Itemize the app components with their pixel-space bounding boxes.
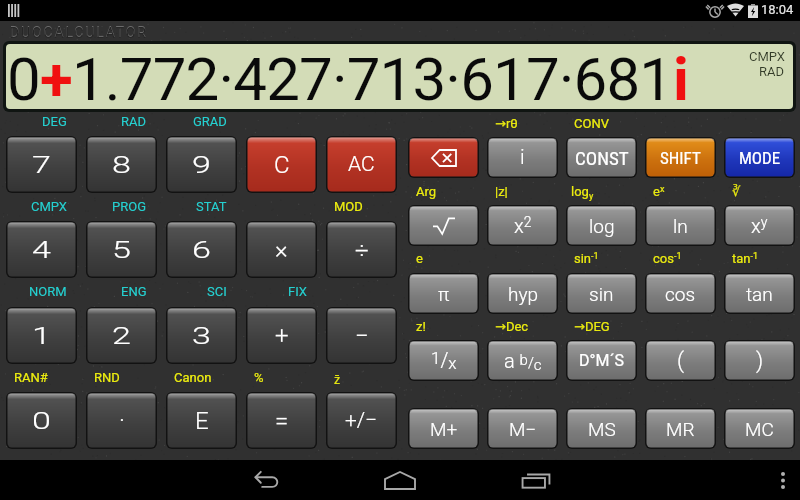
button[interactable]: log bbox=[566, 205, 637, 246]
staticText: M+ bbox=[430, 418, 458, 440]
button[interactable]: 6 bbox=[166, 221, 237, 278]
button[interactable]: tan bbox=[724, 273, 795, 314]
staticText: DUOCALCULATOR bbox=[10, 25, 148, 41]
staticText: Canon bbox=[174, 370, 212, 385]
staticText: logy bbox=[571, 184, 594, 201]
staticText: π bbox=[438, 283, 450, 305]
staticText: MOD bbox=[334, 199, 363, 214]
staticText: 1 bbox=[32, 322, 52, 350]
button[interactable]: − bbox=[326, 307, 397, 364]
staticText: AC bbox=[348, 152, 375, 177]
button[interactable]: × bbox=[246, 221, 317, 278]
button[interactable]: cos bbox=[645, 273, 716, 314]
button[interactable]: 0 bbox=[6, 392, 77, 449]
button[interactable]: 2 bbox=[86, 307, 157, 364]
button[interactable]: a b/c bbox=[487, 340, 558, 381]
button[interactable]: ) bbox=[724, 340, 795, 381]
button[interactable]: 1 bbox=[6, 307, 77, 364]
button[interactable]: MS bbox=[566, 408, 637, 449]
staticText: z! bbox=[416, 319, 426, 334]
staticText: i bbox=[673, 44, 689, 109]
staticText: 6 bbox=[192, 236, 212, 264]
button[interactable]: D°M´S bbox=[566, 340, 637, 381]
button[interactable]: M− bbox=[487, 408, 558, 449]
button[interactable]: Home bbox=[370, 460, 430, 500]
button[interactable]: 3 bbox=[166, 307, 237, 364]
button[interactable]: · bbox=[86, 392, 157, 449]
staticText: NORM bbox=[29, 284, 67, 299]
button[interactable]: 5 bbox=[86, 221, 157, 278]
staticText: ÷ bbox=[355, 236, 369, 264]
button[interactable]: Backspace bbox=[408, 137, 479, 178]
staticText: D°M´S bbox=[579, 351, 624, 370]
staticText: →rθ bbox=[495, 116, 518, 131]
button[interactable]: x2 bbox=[487, 205, 558, 246]
staticText: × bbox=[275, 236, 288, 264]
staticText: 4 bbox=[32, 236, 52, 264]
button[interactable]: MODE bbox=[724, 137, 795, 178]
staticText: 18:04 bbox=[761, 2, 794, 17]
button[interactable]: SHIFT bbox=[645, 137, 716, 178]
button[interactable]: Back bbox=[235, 460, 295, 500]
staticText: + bbox=[275, 322, 289, 350]
staticText: = bbox=[275, 407, 289, 435]
staticText: RND bbox=[94, 370, 120, 385]
button[interactable]: 7 bbox=[6, 136, 77, 193]
staticText: xy bbox=[751, 214, 768, 237]
button[interactable]: MR bbox=[645, 408, 716, 449]
staticText: cos-1 bbox=[653, 251, 682, 266]
staticText: RAN# bbox=[14, 370, 48, 385]
button[interactable]: ÷ bbox=[326, 221, 397, 278]
staticText: 9 bbox=[192, 151, 212, 179]
staticText: − bbox=[355, 322, 369, 350]
staticText: MC bbox=[745, 418, 774, 440]
button[interactable]: 1/x bbox=[408, 340, 479, 381]
staticText: DUOCALCULATOR bbox=[10, 24, 148, 40]
staticText: RAD bbox=[759, 64, 785, 79]
staticText: 2 bbox=[112, 322, 132, 350]
button[interactable]: π bbox=[408, 273, 479, 314]
staticText: ∛ bbox=[732, 184, 741, 199]
staticText: tan bbox=[746, 283, 773, 305]
button[interactable]: ( bbox=[645, 340, 716, 381]
staticText: DEG bbox=[42, 114, 67, 129]
button[interactable]: hyp bbox=[487, 273, 558, 314]
staticText: ex bbox=[653, 184, 665, 199]
staticText: z̄ bbox=[334, 370, 341, 388]
button[interactable]: E bbox=[166, 392, 237, 449]
staticText: M− bbox=[509, 418, 537, 440]
staticText: cos bbox=[665, 283, 696, 305]
button[interactable]: xy bbox=[724, 205, 795, 246]
button[interactable]: i bbox=[487, 137, 558, 178]
staticText: + bbox=[40, 44, 72, 109]
button[interactable]: C bbox=[246, 136, 317, 193]
button[interactable]: MC bbox=[724, 408, 795, 449]
button[interactable]: AC bbox=[326, 136, 397, 193]
staticText: MR bbox=[666, 418, 695, 440]
button[interactable]: sin bbox=[566, 273, 637, 314]
staticText: 0 bbox=[7, 44, 40, 109]
staticText: +/− bbox=[345, 408, 378, 433]
button[interactable]: 8 bbox=[86, 136, 157, 193]
button[interactable]: 4 bbox=[6, 221, 77, 278]
button[interactable]: Recent apps bbox=[506, 460, 566, 500]
staticText: a b/c bbox=[504, 349, 542, 373]
staticText: ln bbox=[673, 215, 688, 237]
staticText: 3 bbox=[192, 322, 212, 350]
button[interactable]: + bbox=[246, 307, 317, 364]
staticText: CMPX bbox=[31, 199, 67, 214]
staticText: ( bbox=[677, 348, 685, 374]
button[interactable]: M+ bbox=[408, 408, 479, 449]
button[interactable]: 9 bbox=[166, 136, 237, 193]
staticText: SCI bbox=[207, 284, 227, 299]
button[interactable]: Square root bbox=[408, 205, 479, 246]
button[interactable]: ln bbox=[645, 205, 716, 246]
staticText: PROG bbox=[112, 199, 147, 214]
staticText: log bbox=[589, 215, 615, 237]
button[interactable]: +/− bbox=[326, 392, 397, 449]
button[interactable]: = bbox=[246, 392, 317, 449]
staticText: FIX bbox=[288, 284, 307, 299]
staticText: MODE bbox=[739, 148, 781, 168]
button[interactable]: CONST bbox=[566, 137, 637, 178]
button[interactable]: More options bbox=[766, 460, 800, 500]
